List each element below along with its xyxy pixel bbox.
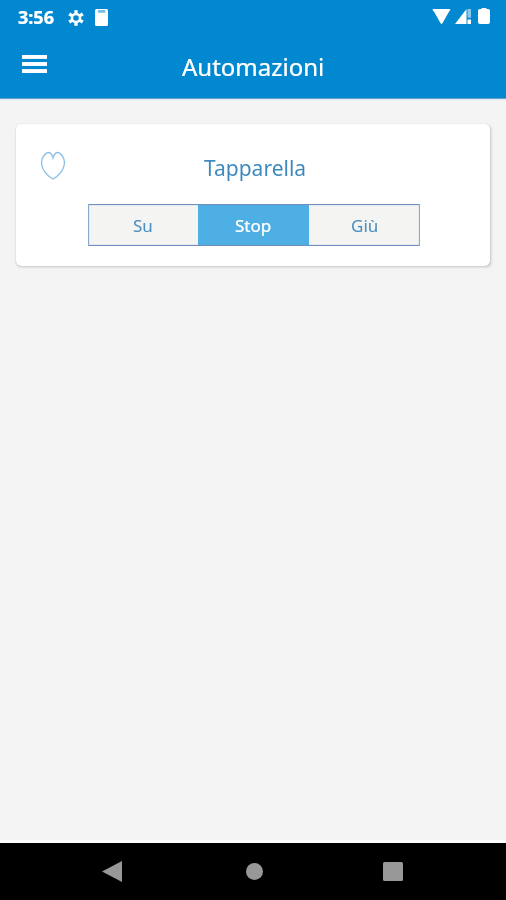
button[interactable]: Stop bbox=[198, 204, 309, 246]
staticText: Giù bbox=[351, 214, 379, 237]
button[interactable]: Recents bbox=[369, 847, 417, 895]
staticText: Tapparella bbox=[204, 154, 307, 183]
staticText: 3:56 bbox=[18, 5, 54, 30]
button[interactable]: Su bbox=[88, 204, 198, 246]
staticText: Automazioni bbox=[182, 50, 325, 83]
button[interactable]: Giù bbox=[309, 204, 420, 246]
staticText: Su bbox=[133, 214, 153, 237]
button[interactable]: Favorite bbox=[16, 124, 490, 266]
button[interactable]: Favorite bbox=[39, 152, 67, 179]
button[interactable]: Home bbox=[230, 847, 278, 895]
button[interactable]: Back bbox=[88, 847, 136, 895]
staticText: Stop bbox=[235, 214, 272, 237]
button[interactable]: Menu bbox=[10, 40, 58, 88]
